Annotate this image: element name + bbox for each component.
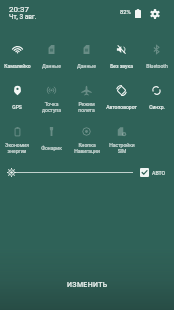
staticText: Настройки SIM xyxy=(109,142,135,154)
staticText: Фонарик xyxy=(41,145,62,151)
staticText: GPS xyxy=(12,104,22,110)
staticText: Данные xyxy=(42,63,61,69)
staticText: ИЗМЕНИТЬ xyxy=(67,281,108,289)
staticText: 20:37 xyxy=(9,5,29,14)
button[interactable]: Автоповорот xyxy=(104,82,139,123)
staticText: Автоповорот xyxy=(106,104,137,110)
button[interactable]: Settings xyxy=(149,8,160,19)
button[interactable]: Синхр. xyxy=(139,82,174,123)
staticText: 82% xyxy=(120,9,131,16)
button[interactable]: GPS xyxy=(0,82,34,123)
button[interactable]: Режим полета xyxy=(69,82,104,123)
staticText: Bluetooth xyxy=(146,63,168,69)
button[interactable]: АВТО xyxy=(140,168,166,177)
staticText: Камалейко xyxy=(4,63,31,69)
button[interactable]: ИЗМЕНИТЬ xyxy=(0,277,174,293)
staticText: АВТО xyxy=(152,170,166,176)
button[interactable]: Экономия энергии xyxy=(0,123,34,164)
button[interactable]: Данные xyxy=(69,41,104,82)
staticText: Режим полета xyxy=(78,101,95,113)
button[interactable]: Кнопка Навигации xyxy=(69,123,104,164)
button[interactable]: Без звука xyxy=(104,41,139,82)
staticText: Данные xyxy=(77,63,96,69)
button[interactable]: Камалейко xyxy=(0,41,34,82)
button[interactable]: Фонарик xyxy=(34,123,69,164)
staticText: Чт, 3 авг. xyxy=(9,13,37,21)
button[interactable]: Настройки SIM xyxy=(104,123,139,164)
staticText: Без звука xyxy=(110,63,133,69)
staticText: Синхр. xyxy=(149,104,165,110)
staticText: Кнопка Навигации xyxy=(74,142,100,154)
staticText: Точка доступа xyxy=(42,101,61,113)
button[interactable]: Данные xyxy=(34,41,69,82)
button[interactable]: Brightness xyxy=(4,165,18,179)
staticText: Экономия энергии xyxy=(5,142,29,154)
button[interactable]: Bluetooth xyxy=(139,41,174,82)
button[interactable]: Точка доступа xyxy=(34,82,69,123)
